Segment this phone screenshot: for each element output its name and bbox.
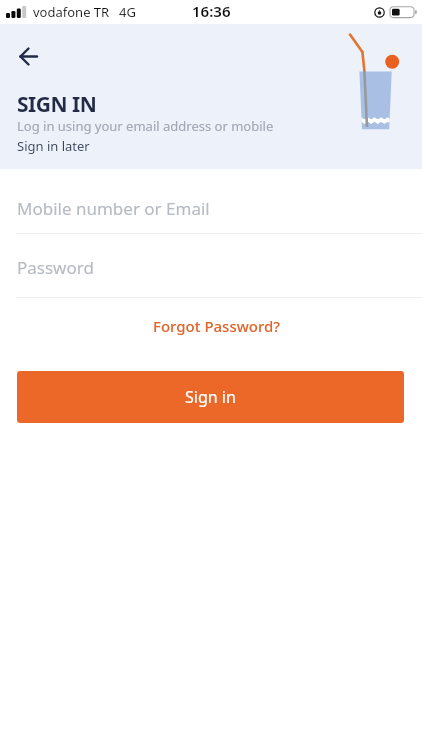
staticText: Sign in [185, 386, 236, 408]
button[interactable]: Sign in later [17, 137, 90, 155]
staticText: 4G [119, 3, 136, 21]
staticText: Log in using your email address or mobil… [17, 117, 274, 135]
button[interactable] [10, 38, 46, 74]
staticText: SIGN IN [17, 90, 97, 119]
button[interactable]: Sign in [17, 371, 404, 423]
staticText: 16:36 [192, 1, 231, 21]
staticText: vodafone TR [33, 3, 110, 21]
button[interactable]: Mobile number or Email [17, 197, 422, 233]
button[interactable]: Forgot Password? [153, 316, 281, 336]
button[interactable]: Password [17, 256, 422, 297]
staticText: Mobile number or Email [17, 197, 210, 220]
staticText: Password [17, 256, 94, 279]
